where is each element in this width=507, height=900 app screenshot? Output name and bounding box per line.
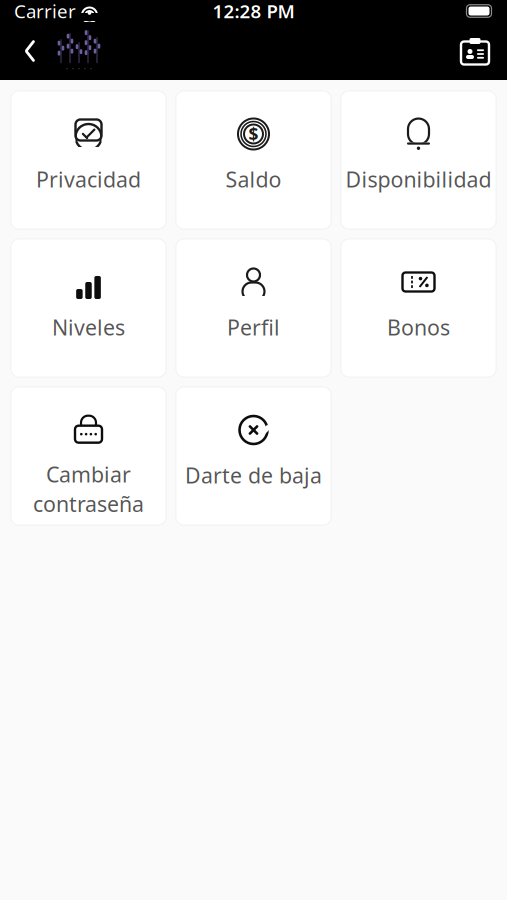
staticText: Disponibilidad bbox=[345, 165, 491, 193]
staticText: Perfil bbox=[227, 313, 280, 341]
staticText: Saldo bbox=[225, 165, 281, 193]
button[interactable]: Cambiar bbox=[11, 387, 166, 525]
staticText: Bonos bbox=[387, 313, 450, 341]
button[interactable]: Privacidad bbox=[11, 91, 166, 229]
staticText: Cambiar bbox=[46, 460, 131, 488]
button[interactable]: Darte de baja bbox=[176, 387, 331, 525]
staticText: · · · · · bbox=[66, 64, 92, 73]
staticText: $ bbox=[248, 122, 258, 145]
staticText: 12:28 PM bbox=[212, 0, 294, 23]
staticText: Darte de baja bbox=[185, 461, 322, 489]
button[interactable]: $ bbox=[176, 91, 331, 229]
button[interactable]: Back bbox=[10, 29, 50, 73]
button[interactable]: Bonos bbox=[341, 239, 496, 377]
button[interactable]: Niveles bbox=[11, 239, 166, 377]
staticText: Carrier bbox=[14, 0, 76, 23]
staticText: Privacidad bbox=[36, 165, 141, 193]
button[interactable]: Credencial bbox=[449, 29, 501, 73]
button[interactable]: Disponibilidad bbox=[341, 91, 496, 229]
button[interactable]: Perfil bbox=[176, 239, 331, 377]
staticText: Niveles bbox=[52, 313, 125, 341]
staticText: contraseña bbox=[33, 489, 144, 518]
